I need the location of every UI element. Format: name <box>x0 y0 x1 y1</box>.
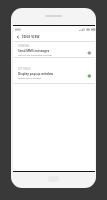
staticText: Send MMS messages <box>18 49 50 53</box>
staticText: Display pop-up window <box>18 77 41 80</box>
staticText: EDGE VIEW <box>22 35 40 39</box>
button[interactable]: Toggle Send MMS messages <box>85 50 92 56</box>
button[interactable]: Display pop-up window <box>13 72 95 80</box>
staticText: GENERAL <box>18 44 30 47</box>
button[interactable]: Send MMS messages <box>13 49 95 57</box>
staticText: Display pop-up window <box>18 72 54 76</box>
button[interactable]: Back <box>13 32 22 41</box>
staticText: Security and multimedia messages <box>18 54 53 57</box>
button[interactable]: Toggle Display pop-up window <box>85 73 92 79</box>
staticText: SETTINGS <box>18 67 31 70</box>
